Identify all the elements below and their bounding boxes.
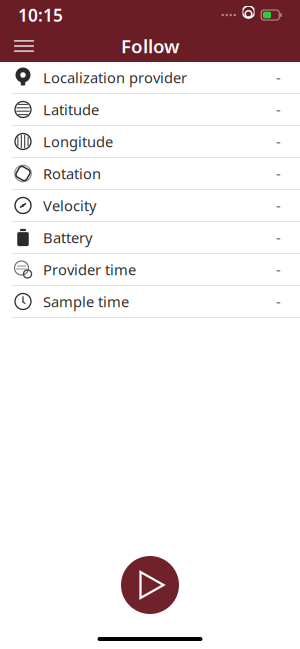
button[interactable]: Rotation: [0, 158, 300, 190]
staticText: Battery: [43, 228, 92, 247]
button[interactable]: Latitude: [0, 94, 300, 126]
staticText: -: [276, 164, 281, 183]
button[interactable]: Battery: [0, 222, 300, 254]
staticText: -: [276, 292, 281, 311]
button[interactable]: Menu: [2, 30, 46, 62]
staticText: Velocity: [43, 196, 96, 215]
staticText: Longitude: [43, 132, 113, 151]
button[interactable]: Longitude: [0, 126, 300, 158]
staticText: -: [276, 260, 281, 279]
button[interactable]: Play: [119, 554, 181, 616]
button[interactable]: Localization provider: [0, 62, 300, 94]
staticText: -: [276, 196, 281, 215]
staticText: 10:15: [18, 3, 63, 26]
staticText: -: [276, 132, 281, 151]
staticText: Localization provider: [43, 68, 187, 87]
staticText: Follow: [121, 34, 179, 58]
staticText: Rotation: [43, 164, 101, 183]
button[interactable]: Sample time: [0, 286, 300, 318]
staticText: Provider time: [43, 260, 136, 279]
button[interactable]: Velocity: [0, 190, 300, 222]
staticText: Sample time: [43, 292, 129, 311]
button[interactable]: Provider time: [0, 254, 300, 286]
staticText: -: [276, 68, 281, 87]
staticText: -: [276, 100, 281, 119]
staticText: Latitude: [43, 100, 99, 119]
staticText: -: [276, 228, 281, 247]
